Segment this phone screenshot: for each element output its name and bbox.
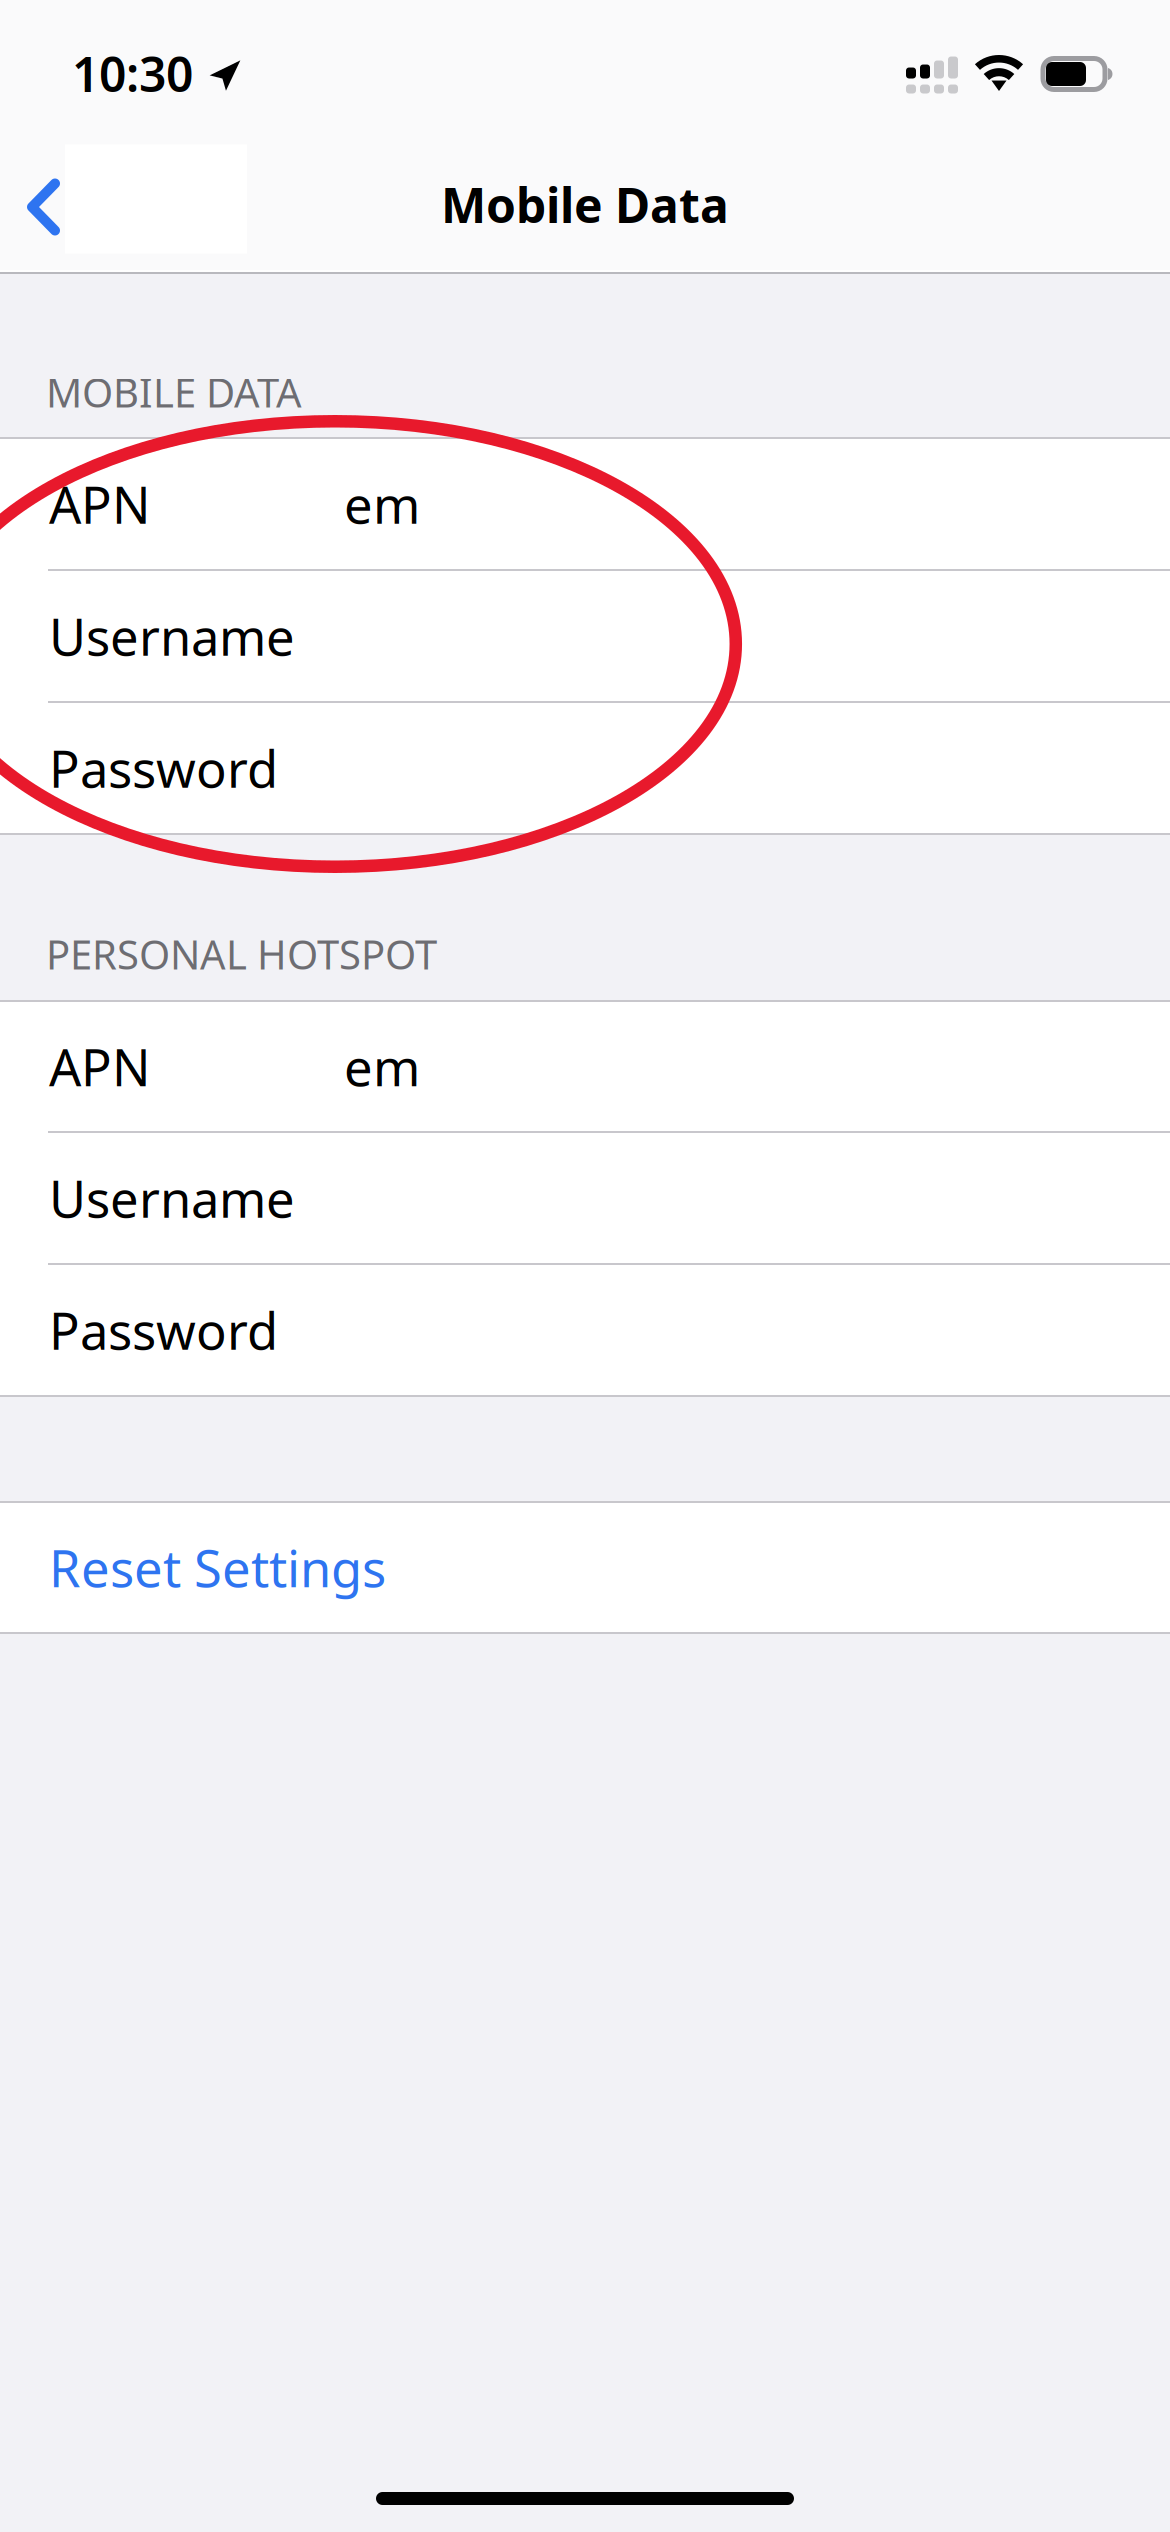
button[interactable]: Reset Settings — [0, 1503, 1170, 1632]
button[interactable]: Username — [0, 571, 1170, 701]
button[interactable]: Password — [0, 1265, 1170, 1395]
staticText: Reset Settings — [49, 1534, 386, 1601]
button[interactable]: APN — [0, 1002, 1170, 1131]
staticText: MOBILE DATA — [46, 365, 302, 418]
staticText: PERSONAL HOTSPOT — [46, 927, 437, 980]
staticText: Username — [49, 602, 295, 670]
staticText: Username — [49, 1164, 295, 1232]
button[interactable]: APN — [0, 439, 1170, 569]
button[interactable]: Password — [0, 703, 1170, 833]
button[interactable]: Username — [0, 1133, 1170, 1263]
staticText: Mobile Data — [441, 173, 729, 236]
staticText: Password — [49, 734, 278, 802]
staticText: em — [344, 1033, 420, 1100]
staticText: APN — [49, 470, 151, 538]
staticText: Password — [49, 1296, 278, 1364]
staticText: 10:30 — [72, 41, 193, 105]
button[interactable]: Back — [0, 137, 262, 271]
staticText: APN — [49, 1033, 151, 1100]
staticText: em — [344, 470, 420, 538]
